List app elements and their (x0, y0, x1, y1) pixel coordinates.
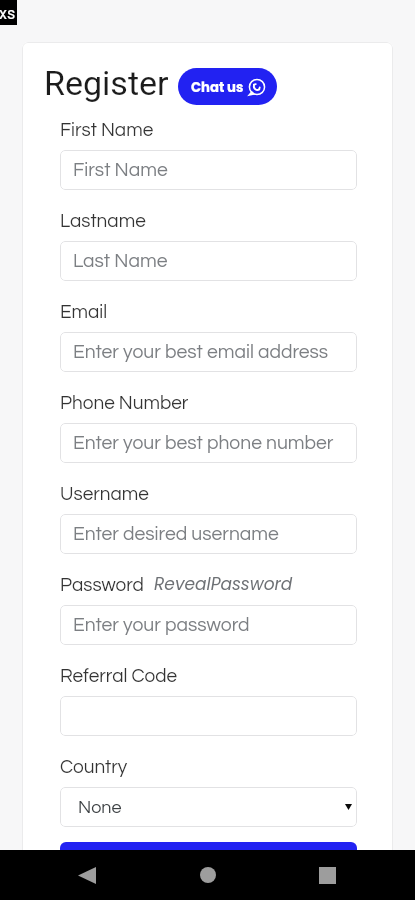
button[interactable]: None (60, 787, 357, 827)
staticText: Country (60, 757, 128, 777)
staticText: Password (60, 575, 144, 595)
button[interactable]: Enter your password (60, 605, 357, 645)
button[interactable] (60, 696, 357, 736)
staticText: Lastname (60, 211, 146, 231)
staticText: None (78, 798, 122, 817)
button[interactable]: Enter desired username (60, 514, 357, 554)
staticText: Register (44, 63, 169, 103)
staticText: First Name (73, 160, 168, 180)
staticText: Chat us (191, 78, 244, 96)
button[interactable]: Home (191, 858, 225, 892)
button[interactable]: Enter your best email address (60, 332, 357, 372)
button[interactable]: Last Name (60, 241, 357, 281)
button[interactable]: Chat us (178, 68, 277, 105)
button[interactable]: Register (60, 842, 357, 872)
staticText: Username (60, 484, 149, 504)
other: WhatsApp (248, 78, 266, 96)
button[interactable]: Recent apps (310, 858, 344, 892)
other: Open country list (345, 804, 352, 810)
staticText: First Name (60, 120, 154, 140)
button[interactable]: Back (70, 858, 104, 892)
staticText: Phone Number (60, 393, 189, 413)
staticText: Enter your best email address (73, 342, 329, 362)
staticText: Referral Code (60, 666, 178, 686)
button[interactable]: Enter your best phone number (60, 423, 357, 463)
staticText: Last Name (73, 251, 168, 271)
button[interactable]: First Name (60, 150, 357, 190)
staticText: Email (60, 302, 108, 322)
staticText: xs (0, 4, 16, 23)
staticText: Enter your best phone number (73, 433, 334, 453)
staticText: Register (175, 848, 242, 867)
staticText: RevealPassword (154, 572, 293, 596)
staticText: Enter your password (73, 615, 250, 635)
staticText: Enter desired username (73, 524, 279, 544)
